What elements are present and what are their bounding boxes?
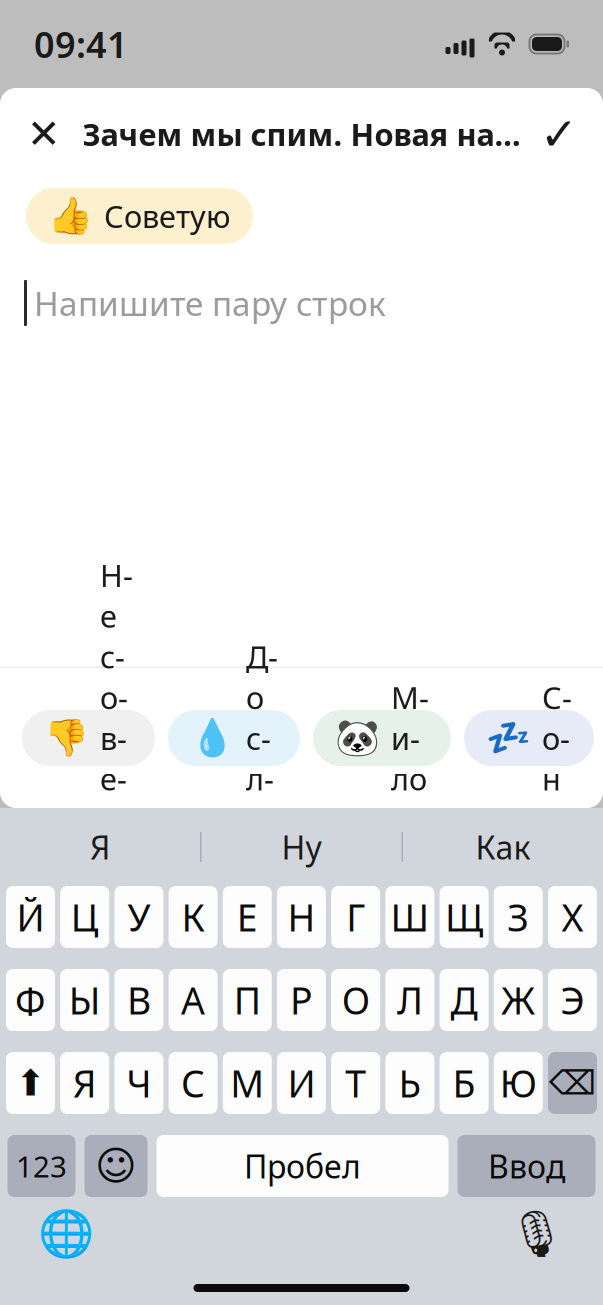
- button[interactable]: О: [331, 969, 380, 1031]
- staticText: ✕: [27, 111, 61, 157]
- staticText: ⌫: [549, 1064, 596, 1102]
- staticText: Ю: [500, 1058, 537, 1108]
- button[interactable]: Э: [548, 969, 597, 1031]
- button[interactable]: Как: [403, 808, 603, 886]
- staticText: К: [182, 892, 205, 942]
- button[interactable]: А: [169, 969, 218, 1031]
- button[interactable]: П: [223, 969, 272, 1031]
- button[interactable]: Ь: [385, 1052, 434, 1114]
- button[interactable]: Ф: [6, 969, 55, 1031]
- staticText: О: [342, 975, 370, 1025]
- button[interactable]: Ввод: [457, 1135, 595, 1197]
- button[interactable]: С: [169, 1052, 218, 1114]
- staticText: Е: [237, 892, 258, 942]
- staticText: Ф: [15, 975, 46, 1025]
- staticText: Ввод: [488, 1145, 565, 1187]
- button[interactable]: Shift: [6, 1052, 55, 1114]
- staticText: 👎: [44, 717, 89, 758]
- button[interactable]: Пробел: [156, 1135, 448, 1197]
- staticText: В: [127, 975, 151, 1025]
- staticText: Я: [90, 826, 110, 868]
- staticText: П: [234, 975, 261, 1025]
- button[interactable]: Закрыть: [22, 112, 66, 156]
- button[interactable]: Б: [440, 1052, 489, 1114]
- staticText: Э: [560, 975, 584, 1025]
- staticText: У: [127, 892, 150, 942]
- button[interactable]: У: [114, 886, 163, 948]
- staticText: Не советую: [100, 555, 133, 921]
- button[interactable]: Х: [548, 886, 597, 948]
- staticText: Мило: [391, 677, 429, 799]
- staticText: Пробел: [244, 1145, 361, 1187]
- staticText: Ж: [501, 975, 535, 1025]
- button[interactable]: Р: [277, 969, 326, 1031]
- button[interactable]: Ч: [114, 1052, 163, 1114]
- staticText: Р: [290, 975, 313, 1025]
- staticText: А: [181, 975, 205, 1025]
- staticText: До слез: [246, 636, 278, 840]
- button[interactable]: З: [494, 886, 543, 948]
- button[interactable]: Ж: [494, 969, 543, 1031]
- button[interactable]: Й: [6, 886, 55, 948]
- staticText: 🌐: [38, 1208, 94, 1260]
- staticText: 09:41: [34, 20, 128, 68]
- button[interactable]: Щ: [440, 886, 489, 948]
- staticText: ✓: [540, 108, 578, 160]
- button[interactable]: К: [169, 886, 218, 948]
- staticText: ☺: [95, 1143, 137, 1189]
- staticText: 💧: [190, 717, 235, 758]
- button[interactable]: М: [223, 1052, 272, 1114]
- button[interactable]: Я: [60, 1052, 109, 1114]
- staticText: Л: [397, 975, 423, 1025]
- button[interactable]: 💧: [168, 710, 300, 766]
- staticText: Сон: [542, 677, 572, 799]
- button[interactable]: Е: [223, 886, 272, 948]
- button[interactable]: Л: [385, 969, 434, 1031]
- button[interactable]: Ы: [60, 969, 109, 1031]
- staticText: Напишите пару строк: [34, 281, 386, 325]
- button[interactable]: Готово: [537, 112, 581, 156]
- staticText: Ну: [281, 826, 321, 868]
- staticText: 🎙: [508, 1208, 566, 1260]
- staticText: Я: [73, 1058, 97, 1108]
- button[interactable]: В: [114, 969, 163, 1031]
- button[interactable]: Ц: [60, 886, 109, 948]
- button[interactable]: Эмодзи: [84, 1135, 147, 1197]
- staticText: З: [507, 892, 529, 942]
- staticText: Т: [345, 1058, 366, 1108]
- button[interactable]: Ну: [201, 808, 401, 886]
- staticText: ⬆: [15, 1063, 45, 1103]
- staticText: Ч: [126, 1058, 151, 1108]
- staticText: 123: [16, 1146, 67, 1185]
- staticText: Ы: [69, 975, 101, 1025]
- button[interactable]: Т: [331, 1052, 380, 1114]
- button[interactable]: 123: [7, 1135, 75, 1197]
- button[interactable]: И: [277, 1052, 326, 1114]
- button[interactable]: Г: [331, 886, 380, 948]
- button[interactable]: Сменить язык: [36, 1204, 96, 1264]
- button[interactable]: Диктовка: [507, 1204, 567, 1264]
- staticText: Советую: [104, 196, 231, 236]
- staticText: Как: [475, 826, 530, 868]
- staticText: Б: [453, 1058, 476, 1108]
- staticText: С: [181, 1058, 205, 1108]
- button[interactable]: Д: [440, 969, 489, 1031]
- staticText: Н: [287, 892, 315, 942]
- staticText: Ь: [398, 1058, 421, 1108]
- staticText: Д: [451, 975, 478, 1025]
- staticText: М: [230, 1058, 264, 1108]
- staticText: 🐼: [335, 717, 380, 758]
- button[interactable]: 🐼: [313, 710, 451, 766]
- button[interactable]: Удалить: [548, 1052, 597, 1114]
- staticText: Щ: [445, 892, 483, 942]
- button[interactable]: 👎: [22, 710, 155, 766]
- staticText: Ц: [71, 892, 99, 942]
- button[interactable]: Ш: [385, 886, 434, 948]
- staticText: Ш: [390, 892, 429, 942]
- button[interactable]: 💤: [464, 710, 594, 766]
- button[interactable]: Н: [277, 886, 326, 948]
- button[interactable]: Я: [0, 808, 200, 886]
- button[interactable]: 👍: [26, 188, 253, 244]
- button[interactable]: Ю: [494, 1052, 543, 1114]
- staticText: Й: [16, 892, 44, 942]
